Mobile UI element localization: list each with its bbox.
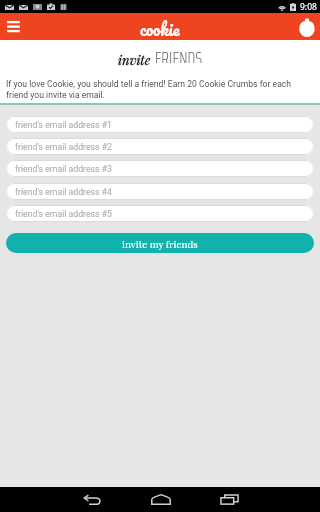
- button[interactable]: invite my friends: [6, 233, 314, 253]
- button[interactable]: friend's email address #5: [6, 205, 314, 222]
- staticText: friend's email address #3: [15, 164, 112, 174]
- staticText: friend's email address #2: [15, 142, 112, 152]
- staticText: friend's email address #5: [15, 209, 112, 219]
- staticText: FRIENDS: [155, 43, 202, 63]
- button[interactable]: Home: [140, 487, 181, 512]
- button[interactable]: Recent apps: [209, 487, 250, 512]
- staticText: If you love Cookie, you should tell a fr…: [6, 79, 314, 100]
- staticText: invite: [118, 51, 151, 68]
- button[interactable]: friend's email address #4: [6, 183, 314, 200]
- staticText: friend's email address #1: [15, 120, 112, 130]
- button[interactable]: friend's email address #2: [6, 138, 314, 155]
- staticText: friend's email address #4: [15, 187, 112, 197]
- button[interactable]: Cookie: [293, 13, 320, 40]
- button[interactable]: Menu: [0, 13, 26, 40]
- button[interactable]: Back: [71, 487, 112, 512]
- staticText: invite my friends: [122, 237, 198, 250]
- staticText: 9:08: [300, 1, 317, 13]
- staticText: cookie: [140, 15, 180, 42]
- button[interactable]: friend's email address #3: [6, 160, 314, 177]
- button[interactable]: friend's email address #1: [6, 116, 314, 133]
